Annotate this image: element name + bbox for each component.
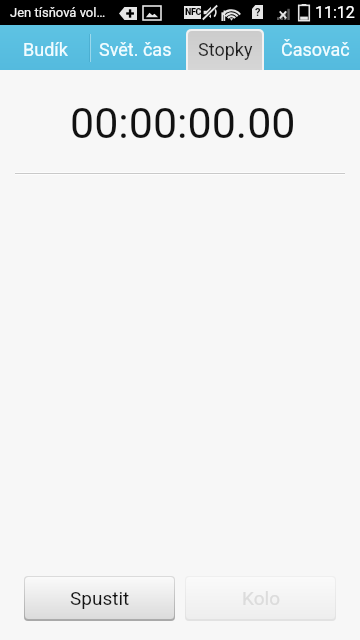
staticText: 00:00:00.00: [70, 98, 296, 148]
button[interactable]: Budík: [0, 25, 90, 70]
button[interactable]: Svět. čas: [90, 25, 180, 70]
button[interactable]: Stopky: [180, 25, 270, 70]
button[interactable]: Časovač: [270, 25, 360, 70]
button[interactable]: Kolo: [186, 577, 335, 619]
button[interactable]: Spustit: [25, 577, 174, 619]
staticText: Jen tísňová vol…: [10, 5, 106, 20]
staticText: 11:12: [315, 3, 355, 22]
staticText: Budík: [23, 39, 68, 60]
staticText: Svět. čas: [99, 39, 172, 60]
staticText: Časovač: [281, 39, 350, 60]
staticText: NFC: [185, 7, 201, 18]
staticText: ?: [255, 6, 261, 19]
staticText: Kolo: [242, 587, 280, 609]
staticText: Stopky: [198, 39, 253, 60]
staticText: Spustit: [70, 587, 130, 609]
